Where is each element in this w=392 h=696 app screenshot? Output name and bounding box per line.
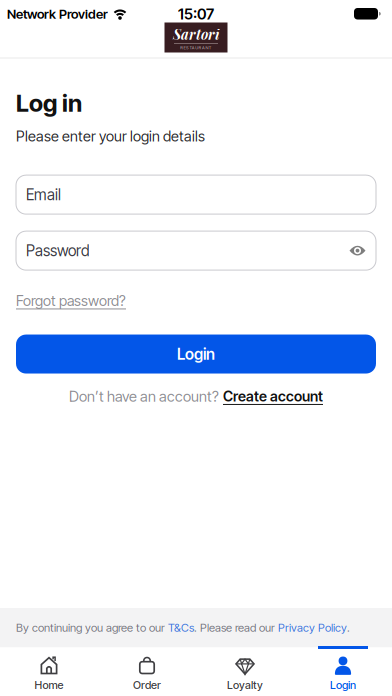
button[interactable]: Order [98,647,196,696]
staticText: By continuing you agree to our [16,621,168,635]
button[interactable]: Login [294,647,392,696]
staticText: Privacy Policy [278,621,347,635]
staticText: Login [177,345,215,363]
staticText: Sartori [173,25,219,43]
staticText: Please enter your login details [16,127,205,145]
staticText: Login [330,678,356,692]
button[interactable]: Forgot password? [16,292,126,309]
staticText: Order [133,678,161,692]
staticText: Network Provider [7,6,108,22]
button[interactable]: Create account [223,388,323,405]
staticText: Email [26,185,61,204]
staticText: . Please read our [194,621,278,635]
button[interactable]: T&Cs [168,621,194,635]
staticText: Forgot password? [16,292,126,309]
button[interactable]: Login [16,334,376,373]
staticText: T&Cs [168,621,194,635]
staticText: Password [26,241,90,260]
staticText: Don’t have an account? [69,387,219,405]
staticText: RESTAURANT [180,45,212,50]
staticText: . [347,621,350,635]
staticText: 15:07 [178,5,214,23]
button[interactable]: Password [16,231,376,270]
button[interactable]: Loyalty [196,647,294,696]
button[interactable]: Privacy Policy [278,621,347,635]
staticText: Log in [16,88,82,117]
button[interactable]: Home [0,647,98,696]
staticText: Home [34,678,63,692]
staticText: Create account [223,388,323,405]
button[interactable]: Email [16,175,376,214]
staticText: Loyalty [227,678,263,692]
